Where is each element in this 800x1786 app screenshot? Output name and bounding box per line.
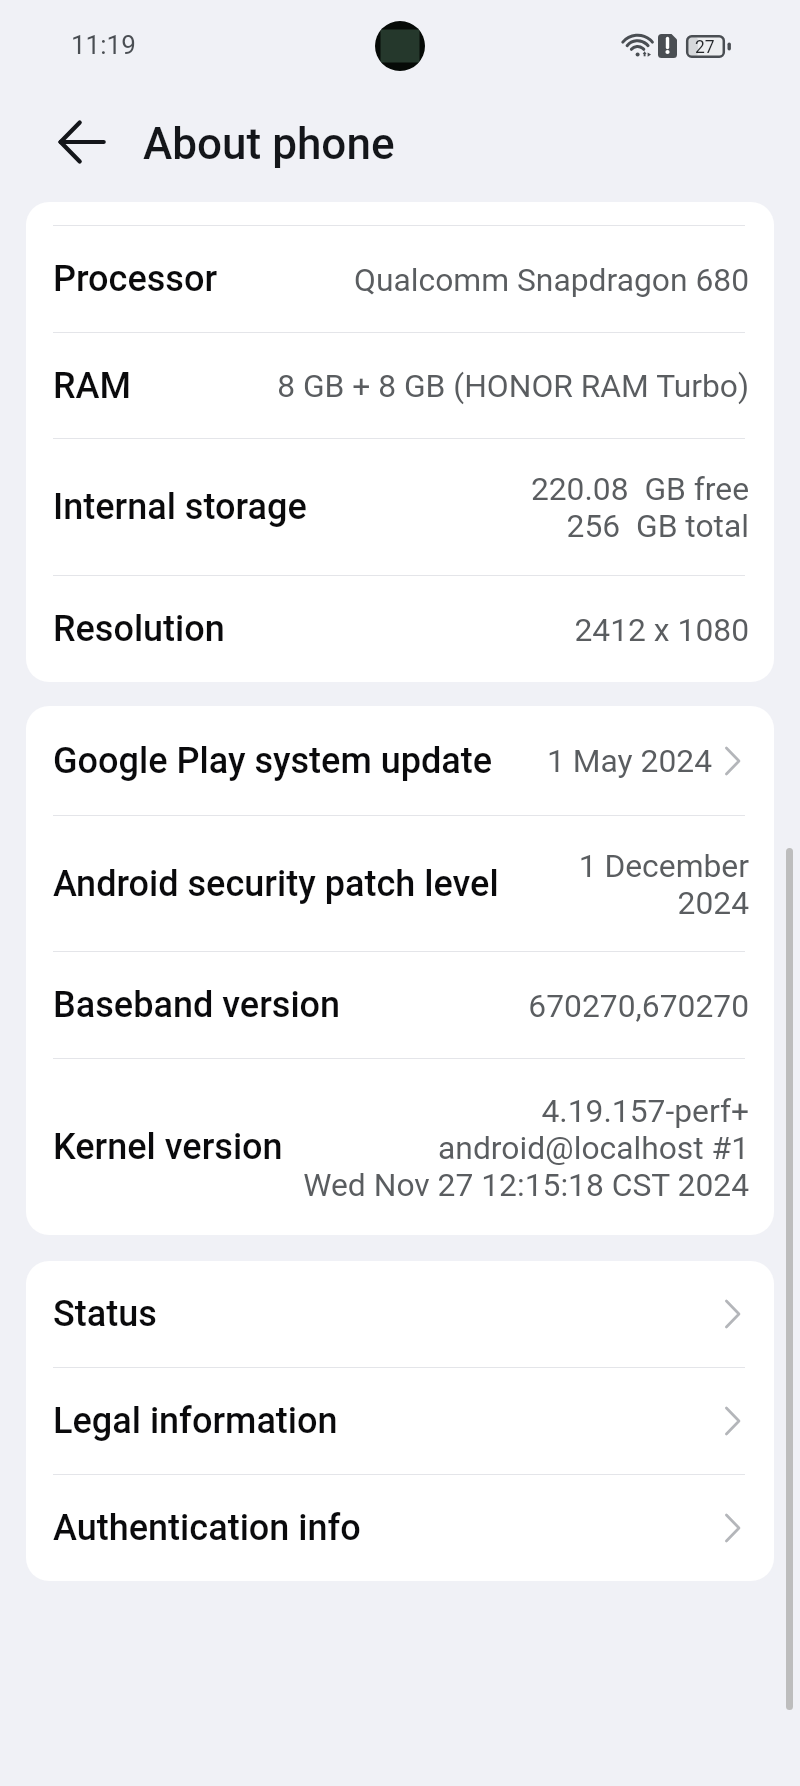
staticText: 256 GB total bbox=[566, 507, 749, 544]
staticText: Resolution bbox=[53, 608, 225, 650]
button[interactable]: RAM bbox=[26, 333, 774, 438]
staticText: 11:19 bbox=[71, 30, 136, 60]
button[interactable]: Processor bbox=[26, 226, 774, 332]
button[interactable]: Authentication info bbox=[26, 1475, 774, 1581]
button[interactable]: Android security patch level bbox=[26, 816, 774, 951]
staticText: 4.19.157-perf+ bbox=[541, 1092, 749, 1129]
staticText: 1 December bbox=[578, 847, 749, 884]
staticText: 670270,670270 bbox=[528, 987, 749, 1024]
button[interactable]: Status bbox=[26, 1261, 774, 1367]
staticText: 220.08 GB free bbox=[530, 470, 749, 507]
staticText: Kernel version bbox=[53, 1126, 283, 1168]
staticText: Baseband version bbox=[53, 984, 341, 1026]
staticText: 2024 bbox=[677, 884, 749, 921]
staticText: Android security patch level bbox=[53, 863, 499, 905]
staticText: 27 bbox=[695, 37, 715, 58]
staticText: Legal information bbox=[53, 1400, 338, 1442]
button[interactable]: Baseband version bbox=[26, 952, 774, 1058]
staticText: 1 May 2024 bbox=[547, 742, 712, 779]
staticText: Wed Nov 27 12:15:18 CST 2024 bbox=[303, 1166, 749, 1203]
button[interactable]: Legal information bbox=[26, 1368, 774, 1474]
button[interactable]: Internal storage bbox=[26, 439, 774, 575]
button[interactable]: Resolution bbox=[26, 576, 774, 682]
staticText: Status bbox=[53, 1293, 157, 1335]
staticText: android@localhost #1 bbox=[438, 1129, 749, 1166]
staticText: Google Play system update bbox=[53, 740, 493, 782]
staticText: 2412 x 1080 bbox=[574, 611, 749, 648]
staticText: About phone bbox=[143, 118, 395, 170]
staticText: RAM bbox=[53, 365, 131, 407]
staticText: Processor bbox=[53, 258, 218, 300]
button[interactable]: Google Play system update bbox=[26, 706, 774, 815]
staticText: 8 GB + 8 GB (HONOR RAM Turbo) bbox=[277, 367, 749, 404]
staticText: Internal storage bbox=[53, 486, 307, 528]
button[interactable]: Kernel version bbox=[26, 1059, 774, 1235]
button[interactable]: Back bbox=[46, 106, 118, 178]
staticText: Qualcomm Snapdragon 680 bbox=[354, 261, 749, 298]
staticText: Authentication info bbox=[53, 1507, 361, 1549]
